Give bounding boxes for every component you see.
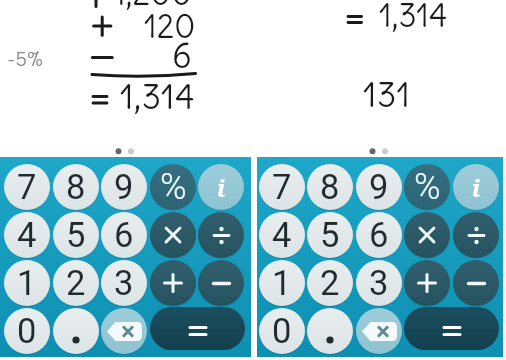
button[interactable]: %	[150, 164, 196, 210]
staticText: 9	[369, 167, 389, 207]
button[interactable]: 0	[4, 308, 50, 354]
button[interactable]	[53, 308, 99, 354]
button[interactable]: 3	[101, 260, 147, 306]
button[interactable]	[198, 260, 244, 306]
staticText: 2	[320, 263, 340, 303]
button[interactable]: 6	[101, 212, 147, 258]
button[interactable]: 1	[259, 260, 305, 306]
button[interactable]: 1	[4, 260, 50, 306]
button[interactable]	[453, 260, 499, 306]
button[interactable]: 2	[53, 260, 99, 306]
button[interactable]: 3	[356, 260, 402, 306]
staticText: 8	[320, 167, 340, 207]
staticText: 9	[114, 167, 134, 207]
button[interactable]	[307, 308, 353, 354]
button[interactable]: 8	[307, 164, 353, 210]
button[interactable]	[150, 307, 245, 350]
button[interactable]: %	[404, 164, 450, 210]
button[interactable]	[150, 260, 196, 306]
staticText: 6	[172, 34, 192, 77]
staticText: 3	[114, 263, 134, 303]
button[interactable]: 2	[307, 260, 353, 306]
button[interactable]: 6	[356, 212, 402, 258]
staticText: 1	[272, 263, 292, 303]
staticText: 4	[272, 215, 292, 255]
button[interactable]: 5	[53, 212, 99, 258]
button[interactable]: 0	[259, 308, 305, 354]
button[interactable]: 7	[259, 164, 305, 210]
staticText: 0	[272, 311, 292, 351]
staticText: 6	[369, 215, 389, 255]
button[interactable]: 8	[53, 164, 99, 210]
staticText: 7	[272, 167, 292, 207]
staticText: 4	[17, 215, 37, 255]
button[interactable]: i	[198, 164, 244, 210]
staticText: %	[414, 166, 441, 208]
staticText: 1,314	[120, 75, 196, 118]
staticText: %	[160, 166, 187, 208]
staticText: 6	[114, 215, 134, 255]
staticText: 120	[144, 6, 196, 46]
button[interactable]: 7	[4, 164, 50, 210]
staticText: 3	[369, 263, 389, 303]
button[interactable]: 4	[259, 212, 305, 258]
staticText: 1,200	[113, 0, 193, 13]
staticText: 2	[66, 263, 86, 303]
staticText: -5%	[7, 46, 44, 71]
button[interactable]	[404, 212, 450, 258]
button[interactable]: 4	[4, 212, 50, 258]
button[interactable]	[150, 212, 196, 258]
staticText: i	[217, 172, 226, 203]
button[interactable]	[198, 212, 244, 258]
staticText: 5	[66, 215, 86, 255]
staticText: 1,314	[379, 0, 448, 35]
staticText: i	[472, 172, 481, 203]
staticText: 131	[363, 73, 411, 116]
button[interactable]	[356, 308, 402, 354]
staticText: 1	[17, 263, 37, 303]
staticText: 7	[17, 167, 37, 207]
button[interactable]	[453, 212, 499, 258]
staticText: 5	[320, 215, 340, 255]
button[interactable]: i	[453, 164, 499, 210]
button[interactable]: 9	[356, 164, 402, 210]
staticText: 8	[66, 167, 86, 207]
staticText: 0	[17, 311, 37, 351]
button[interactable]	[404, 260, 450, 306]
button[interactable]: 5	[307, 212, 353, 258]
button[interactable]	[404, 307, 499, 350]
button[interactable]: 9	[101, 164, 147, 210]
button[interactable]	[101, 308, 147, 354]
